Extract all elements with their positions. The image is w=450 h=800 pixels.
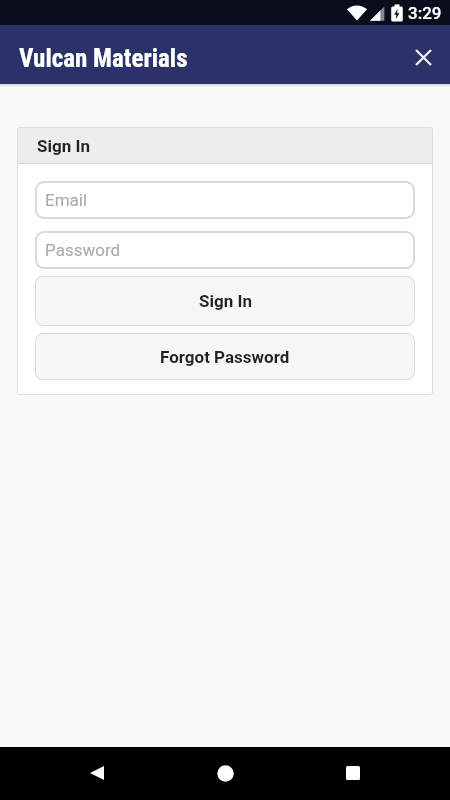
- button[interactable]: Sign In: [35, 276, 415, 326]
- button[interactable]: [329, 749, 377, 797]
- button[interactable]: Forgot Password: [35, 333, 415, 380]
- button[interactable]: Email: [35, 181, 415, 219]
- staticText: Sign In: [199, 291, 252, 311]
- staticText: 3:29: [408, 3, 442, 23]
- button[interactable]: Password: [35, 231, 415, 269]
- button[interactable]: [404, 38, 442, 76]
- button[interactable]: [201, 749, 249, 797]
- staticText: Password: [45, 240, 121, 260]
- staticText: Vulcan Materials: [19, 44, 188, 73]
- staticText: Sign In: [37, 136, 90, 156]
- staticText: Forgot Password: [160, 347, 290, 367]
- button[interactable]: [73, 749, 121, 797]
- staticText: Email: [45, 190, 88, 210]
